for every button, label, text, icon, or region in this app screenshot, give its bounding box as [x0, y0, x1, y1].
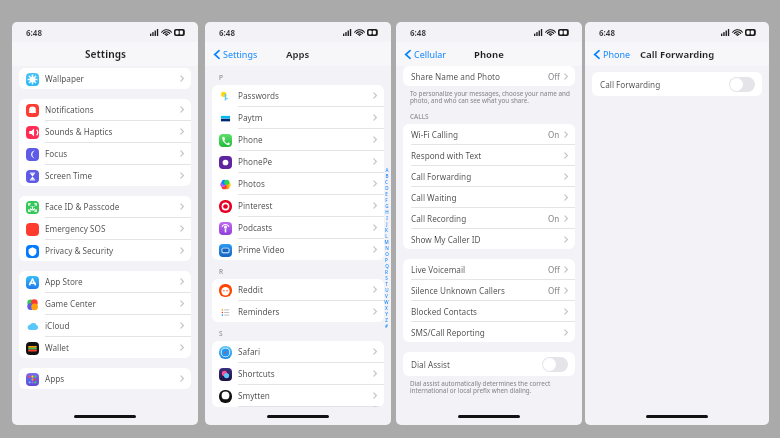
button[interactable]: Phone: [592, 46, 633, 62]
staticText: Notifications: [45, 104, 180, 115]
staticText: U: [385, 287, 389, 293]
button[interactable]: Privacy & Security: [19, 240, 191, 261]
button[interactable]: Phone: [212, 129, 384, 151]
button[interactable]: Shortcuts: [212, 363, 384, 385]
staticText: X: [385, 305, 388, 311]
staticText: Face ID & Passcode: [45, 201, 180, 212]
staticText: Paytm: [238, 112, 373, 123]
staticText: Call Forwarding: [640, 48, 715, 61]
staticText: Sounds & Haptics: [45, 126, 180, 137]
staticText: Off: [548, 264, 560, 275]
staticText: Call Recording: [411, 213, 548, 224]
button[interactable]: Reddit: [212, 279, 384, 301]
button[interactable]: Silence Unknown Callers: [403, 280, 575, 301]
button[interactable]: Wallpaper: [19, 68, 191, 89]
button[interactable]: PhonePe: [212, 151, 384, 173]
button[interactable]: SMS/Call Reporting: [403, 322, 575, 342]
staticText: 6:48: [410, 27, 426, 38]
button[interactable]: Show My Caller ID: [403, 229, 575, 249]
button[interactable]: Smytten: [212, 385, 384, 407]
staticText: D: [385, 185, 389, 191]
staticText: Safari: [238, 346, 373, 357]
button[interactable]: Share Name and Photo: [403, 66, 575, 86]
staticText: Photos: [238, 178, 373, 189]
button[interactable]: Sounds & Haptics: [19, 121, 191, 143]
button[interactable]: App Store: [19, 271, 191, 293]
staticText: Privacy & Security: [45, 245, 180, 256]
button[interactable]: Game Center: [19, 293, 191, 315]
staticText: Focus: [45, 148, 180, 159]
staticText: H: [385, 209, 389, 215]
button[interactable]: Call Forwarding: [592, 72, 762, 96]
button[interactable]: Wallet: [19, 337, 191, 358]
button[interactable]: Reminders: [212, 301, 384, 322]
staticText: Podcasts: [238, 222, 373, 233]
staticText: Respond with Text: [411, 150, 564, 161]
staticText: Dial assist automatically determines the…: [410, 379, 570, 395]
staticText: On: [548, 129, 560, 140]
button[interactable]: Photos: [212, 173, 384, 195]
button[interactable]: Call Waiting: [403, 187, 575, 208]
staticText: Wallet: [45, 342, 180, 353]
staticText: Y: [385, 311, 388, 317]
staticText: Apps: [286, 48, 310, 61]
staticText: L: [385, 233, 388, 239]
button[interactable]: Notifications: [19, 99, 191, 121]
staticText: Apps: [45, 373, 180, 384]
button[interactable]: Live Voicemail: [403, 259, 575, 280]
staticText: T: [385, 281, 388, 287]
button[interactable]: Blocked Contacts: [403, 301, 575, 322]
button[interactable]: Pinterest: [212, 195, 384, 217]
staticText: S: [219, 329, 391, 338]
staticText: K: [385, 227, 388, 233]
button[interactable]: Call Forwarding: [403, 166, 575, 187]
button[interactable]: Settings: [212, 46, 260, 62]
staticText: R: [219, 267, 391, 276]
staticText: F: [385, 197, 388, 203]
staticText: Z: [385, 317, 388, 323]
staticText: iCloud: [45, 320, 180, 331]
staticText: Off: [548, 285, 560, 296]
staticText: E: [385, 191, 388, 197]
staticText: 6:48: [26, 27, 42, 38]
staticText: Phone: [603, 48, 631, 60]
button[interactable]: Podcasts: [212, 217, 384, 239]
button[interactable]: Screen Time: [19, 165, 191, 186]
staticText: Show My Caller ID: [411, 234, 564, 245]
staticText: Smytten: [238, 390, 373, 401]
staticText: 6:48: [599, 27, 615, 38]
button[interactable]: Apps: [19, 368, 191, 389]
button[interactable]: Face ID & Passcode: [19, 196, 191, 218]
button[interactable]: Safari: [212, 341, 384, 363]
button[interactable]: Respond with Text: [403, 145, 575, 166]
staticText: To personalize your messages, choose you…: [410, 89, 570, 105]
button[interactable]: Wi-Fi Calling: [403, 124, 575, 145]
staticText: Shortcuts: [238, 368, 373, 379]
staticText: Q: [385, 263, 389, 269]
staticText: On: [548, 213, 560, 224]
button[interactable]: Cellular: [403, 46, 449, 62]
staticText: CALLS: [410, 112, 582, 121]
staticText: P: [219, 73, 391, 82]
button[interactable]: Dial Assist: [403, 352, 575, 376]
staticText: Wallpaper: [45, 73, 180, 84]
button[interactable]: Emergency SOS: [19, 218, 191, 240]
staticText: SMS/Call Reporting: [411, 327, 564, 338]
staticText: Call Forwarding: [600, 79, 729, 90]
staticText: Emergency SOS: [45, 223, 180, 234]
staticText: I: [386, 215, 388, 221]
button[interactable]: Paytm: [212, 107, 384, 129]
button[interactable]: Passwords: [212, 85, 384, 107]
button[interactable]: Prime Video: [212, 239, 384, 260]
staticText: Share Name and Photo: [411, 71, 548, 82]
staticText: P: [385, 257, 388, 263]
staticText: B: [385, 173, 389, 179]
staticText: PhonePe: [238, 156, 373, 167]
button[interactable]: Call Recording: [403, 208, 575, 229]
staticText: M: [384, 239, 389, 245]
staticText: Settings: [85, 47, 126, 61]
staticText: Phone: [238, 134, 373, 145]
staticText: S: [385, 275, 388, 281]
button[interactable]: Focus: [19, 143, 191, 165]
button[interactable]: iCloud: [19, 315, 191, 337]
